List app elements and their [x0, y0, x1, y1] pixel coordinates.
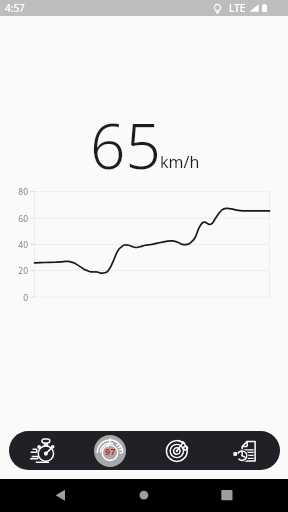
staticText: LTE: [229, 1, 246, 15]
staticText: 40: [0, 239, 28, 251]
button[interactable]: Speedometer: [94, 435, 126, 467]
staticText: 97: [105, 445, 116, 457]
staticText: 60: [0, 213, 28, 225]
button[interactable]: Speedometer: [76, 431, 144, 470]
staticText: 0: [0, 292, 28, 304]
staticText: 65: [90, 103, 161, 187]
button[interactable]: Stopwatch: [9, 431, 76, 470]
staticText: km/h: [160, 151, 200, 173]
staticText: 4:57: [5, 1, 25, 15]
staticText: 80: [0, 186, 28, 198]
staticText: 20: [0, 265, 28, 277]
button[interactable]: History: [212, 431, 280, 470]
button[interactable]: Radar detector: [144, 431, 212, 470]
